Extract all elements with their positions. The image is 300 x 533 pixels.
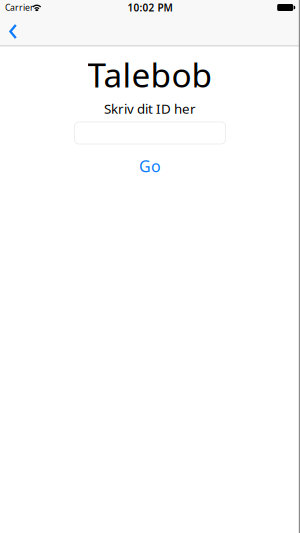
staticText: Carrier bbox=[5, 2, 34, 13]
button[interactable]: Back bbox=[0, 15, 27, 45]
button[interactable]: Go bbox=[139, 155, 161, 177]
staticText: Skriv dit ID her bbox=[104, 100, 196, 117]
staticText: 10:02 PM bbox=[127, 1, 172, 14]
staticText: Talebob bbox=[87, 52, 212, 97]
staticText: Go bbox=[139, 155, 161, 177]
